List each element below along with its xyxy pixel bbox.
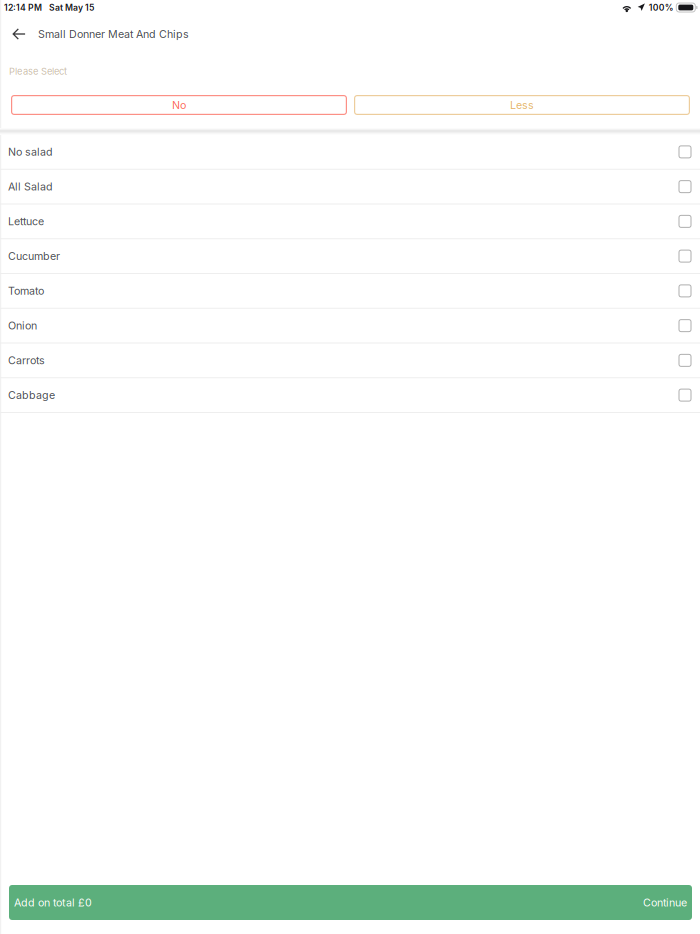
- staticText: Cabbage: [8, 389, 55, 402]
- button[interactable]: No salad: [0, 135, 700, 170]
- staticText: Sat May 15: [49, 2, 94, 13]
- button[interactable]: No: [11, 95, 347, 115]
- staticText: All Salad: [8, 180, 53, 193]
- button[interactable]: Onion: [0, 309, 700, 344]
- staticText: Onion: [8, 319, 37, 332]
- button[interactable]: Carrots: [0, 343, 700, 378]
- staticText: No: [172, 98, 186, 111]
- button[interactable]: All Salad: [0, 170, 700, 205]
- button[interactable]: Add on total £0: [9, 885, 692, 920]
- staticText: No salad: [8, 145, 53, 158]
- staticText: Continue: [643, 896, 687, 909]
- staticText: Please Select: [9, 66, 67, 77]
- staticText: Tomato: [8, 284, 44, 297]
- button[interactable]: Cucumber: [0, 239, 700, 274]
- staticText: Small Donner Meat And Chips: [38, 27, 189, 40]
- staticText: Less: [510, 98, 534, 111]
- button[interactable]: Lettuce: [0, 204, 700, 239]
- staticText: Lettuce: [8, 215, 44, 228]
- staticText: Cucumber: [8, 250, 60, 263]
- staticText: 12:14 PM: [4, 2, 42, 13]
- staticText: Carrots: [8, 354, 45, 367]
- button[interactable]: Less: [354, 95, 690, 115]
- staticText: 100%: [649, 2, 674, 13]
- button[interactable]: Cabbage: [0, 378, 700, 413]
- button[interactable]: Tomato: [0, 274, 700, 309]
- staticText: Add on total £0: [14, 896, 92, 909]
- button[interactable]: Back: [6, 19, 32, 49]
